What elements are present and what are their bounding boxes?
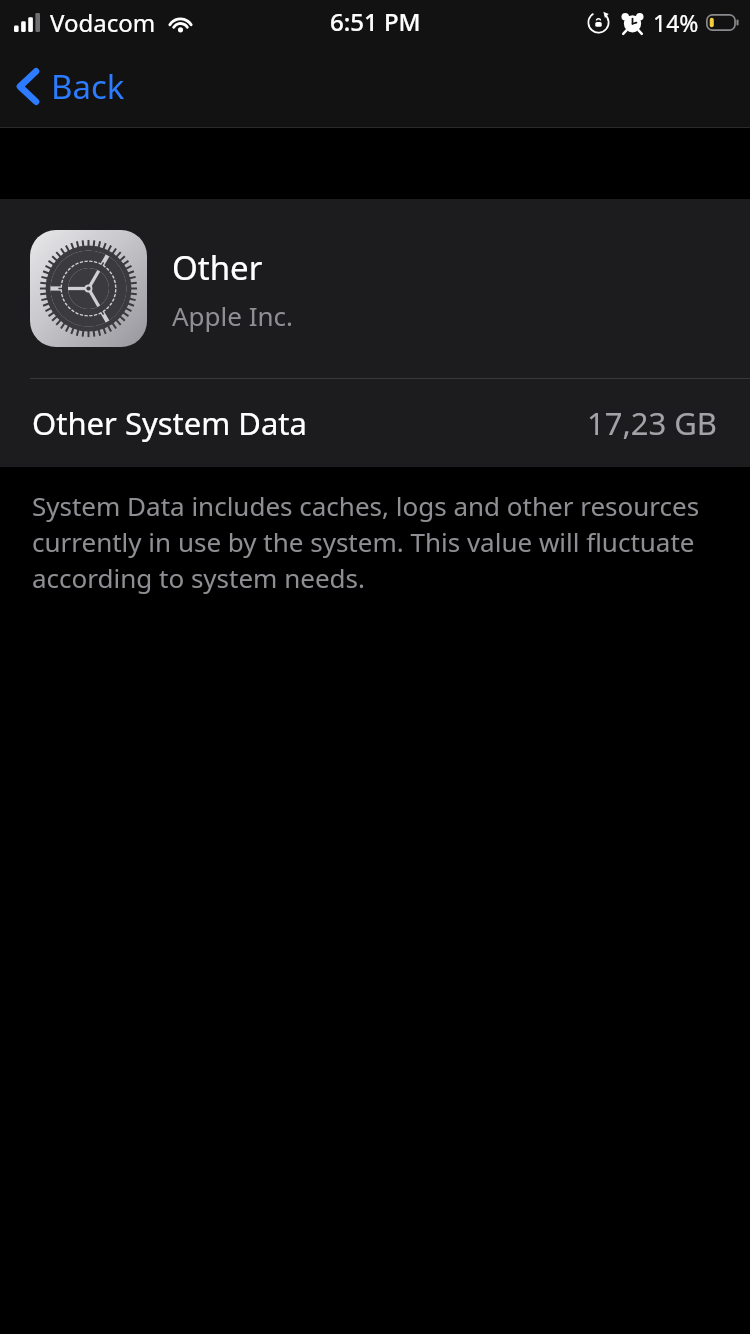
staticText: Other System Data xyxy=(32,402,307,444)
staticText: Other xyxy=(172,245,263,290)
staticText: 17,23 GB xyxy=(587,402,718,444)
staticText: Vodacom xyxy=(50,6,156,39)
button[interactable]: Other System Data xyxy=(0,379,750,467)
staticText: 6:51 PM xyxy=(330,5,421,38)
staticText: 14% xyxy=(653,7,699,38)
staticText: System Data includes caches, logs and ot… xyxy=(32,488,716,596)
staticText: Back xyxy=(51,64,125,109)
button[interactable]: Back xyxy=(0,52,145,121)
button[interactable]: Other xyxy=(0,199,750,378)
other: Back xyxy=(16,67,39,106)
staticText: Apple Inc. xyxy=(172,298,294,333)
